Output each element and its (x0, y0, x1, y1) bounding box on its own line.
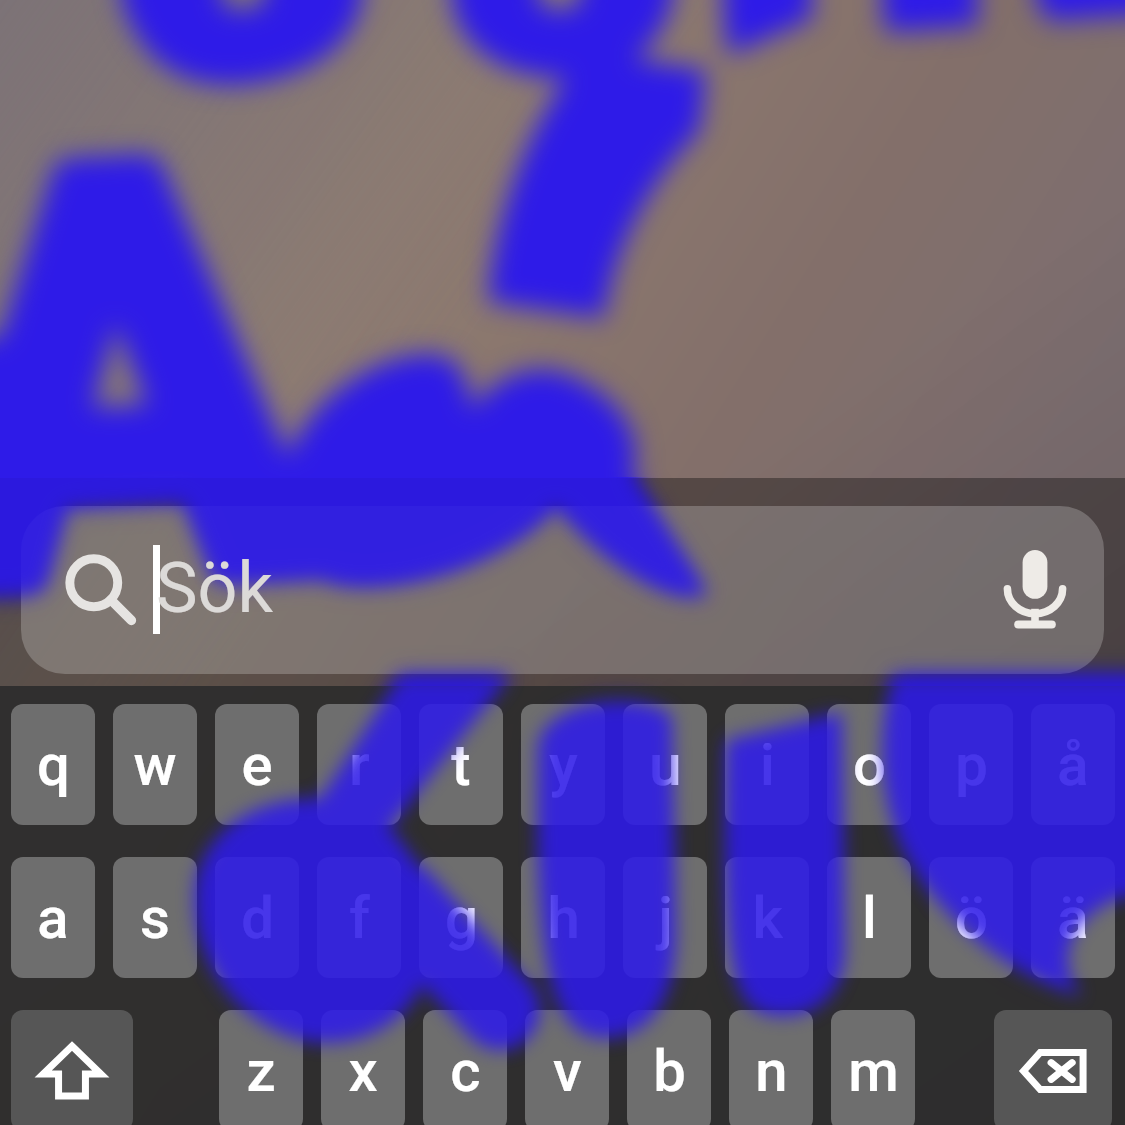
button[interactable]: f (317, 857, 401, 978)
staticText: b (653, 1037, 686, 1105)
button[interactable]: z (219, 1010, 303, 1125)
button[interactable]: g (419, 857, 503, 978)
button[interactable]: p (929, 704, 1013, 825)
button[interactable]: Röstsökning (995, 548, 1075, 628)
staticText: h (547, 884, 580, 952)
button[interactable]: u (623, 704, 707, 825)
staticText: j (658, 884, 673, 952)
button[interactable]: t (419, 704, 503, 825)
button[interactable]: o (827, 704, 911, 825)
button[interactable]: q (11, 704, 95, 825)
button[interactable]: l (827, 857, 911, 978)
button[interactable]: w (113, 704, 197, 825)
staticText: g (445, 884, 478, 952)
button[interactable]: m (831, 1010, 915, 1125)
staticText: z (246, 1037, 276, 1105)
staticText: k (752, 884, 783, 952)
button[interactable]: ä (1031, 857, 1115, 978)
button[interactable]: x (321, 1010, 405, 1125)
staticText: ä (1057, 884, 1089, 952)
button[interactable]: s (113, 857, 197, 978)
staticText: Sök (156, 547, 273, 629)
staticText: r (349, 731, 370, 799)
button[interactable]: b (627, 1010, 711, 1125)
button[interactable] (21, 506, 1104, 674)
staticText: ö (955, 884, 988, 952)
staticText: v (553, 1037, 582, 1105)
staticText: f (349, 884, 370, 952)
staticText: q (37, 731, 70, 799)
button[interactable]: e (215, 704, 299, 825)
button[interactable]: Backsteg (994, 1010, 1112, 1125)
button[interactable]: d (215, 857, 299, 978)
staticText: s (140, 884, 170, 952)
staticText: t (451, 731, 471, 799)
staticText: w (133, 731, 177, 799)
button[interactable]: c (423, 1010, 507, 1125)
staticText: å (1057, 731, 1089, 799)
button[interactable]: n (729, 1010, 813, 1125)
staticText: i (760, 731, 775, 799)
button[interactable]: ö (929, 857, 1013, 978)
staticText: m (848, 1037, 899, 1105)
button[interactable]: r (317, 704, 401, 825)
staticText: c (450, 1037, 481, 1105)
staticText: o (853, 731, 886, 799)
staticText: x (348, 1037, 378, 1105)
staticText: l (862, 884, 877, 952)
button[interactable]: j (623, 857, 707, 978)
staticText: d (241, 884, 274, 952)
button[interactable]: a (11, 857, 95, 978)
staticText: u (649, 731, 682, 799)
staticText: p (955, 731, 988, 799)
button[interactable]: v (525, 1010, 609, 1125)
button[interactable]: h (521, 857, 605, 978)
staticText: e (241, 731, 273, 799)
staticText: a (37, 884, 69, 952)
button[interactable]: i (725, 704, 809, 825)
staticText: n (755, 1037, 788, 1105)
button[interactable]: y (521, 704, 605, 825)
button[interactable]: k (725, 857, 809, 978)
button[interactable]: å (1031, 704, 1115, 825)
staticText: y (549, 731, 578, 799)
button[interactable]: Skift (11, 1010, 133, 1125)
